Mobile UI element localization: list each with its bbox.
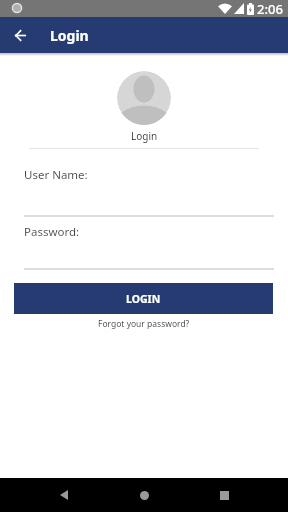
button[interactable]: LOGIN: [14, 283, 273, 314]
button[interactable]: [44, 478, 84, 512]
staticText: Login: [50, 26, 89, 45]
button[interactable]: Forgot your password?: [96, 316, 192, 332]
button[interactable]: [124, 478, 164, 512]
staticText: User Name:: [24, 167, 88, 183]
staticText: LOGIN: [126, 292, 161, 306]
staticText: 2:06: [257, 0, 283, 17]
button[interactable]: [8, 23, 32, 47]
staticText: Forgot your password?: [98, 318, 190, 330]
staticText: Password:: [24, 224, 80, 240]
button[interactable]: [204, 478, 244, 512]
staticText: Login: [131, 129, 158, 143]
